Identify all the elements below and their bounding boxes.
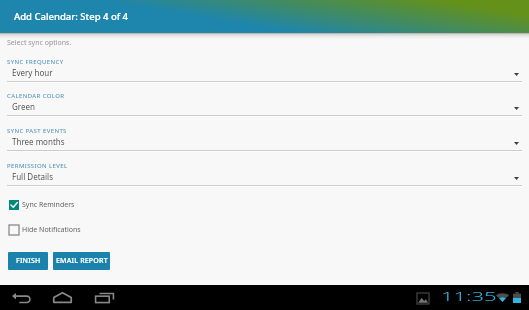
staticText: Hide Notifications bbox=[22, 225, 81, 235]
staticText: SYNC FREQUENCY bbox=[7, 58, 64, 66]
button[interactable]: SYNC FREQUENCY bbox=[0, 58, 529, 84]
button[interactable]: Recent apps bbox=[89, 285, 119, 310]
staticText: Green bbox=[12, 101, 35, 112]
staticText: 11:35 bbox=[441, 287, 497, 302]
button[interactable]: EMAIL REPORT bbox=[53, 252, 110, 270]
staticText: Sync Reminders bbox=[22, 200, 75, 210]
staticText: Add Calendar: Step 4 of 4 bbox=[14, 10, 128, 23]
staticText: PERMISSION LEVEL bbox=[7, 162, 68, 170]
button[interactable]: FINISH bbox=[8, 252, 48, 270]
button[interactable]: Back bbox=[4, 285, 37, 310]
button[interactable]: Sync Reminders bbox=[9, 198, 75, 212]
button[interactable]: Home bbox=[47, 285, 77, 310]
staticText: EMAIL REPORT bbox=[56, 256, 108, 266]
staticText: Full Details bbox=[12, 171, 53, 182]
button[interactable]: CALENDAR COLOR bbox=[0, 92, 529, 118]
staticText: CALENDAR COLOR bbox=[7, 92, 65, 100]
button[interactable]: PERMISSION LEVEL bbox=[0, 162, 529, 188]
staticText: Every hour bbox=[12, 67, 53, 78]
staticText: Select sync options. bbox=[7, 38, 72, 48]
staticText: FINISH bbox=[16, 256, 41, 266]
button[interactable]: SYNC PAST EVENTS bbox=[0, 127, 529, 153]
staticText: Three months bbox=[12, 136, 65, 147]
staticText: SYNC PAST EVENTS bbox=[7, 127, 67, 135]
button[interactable]: Hide Notifications bbox=[9, 223, 81, 237]
